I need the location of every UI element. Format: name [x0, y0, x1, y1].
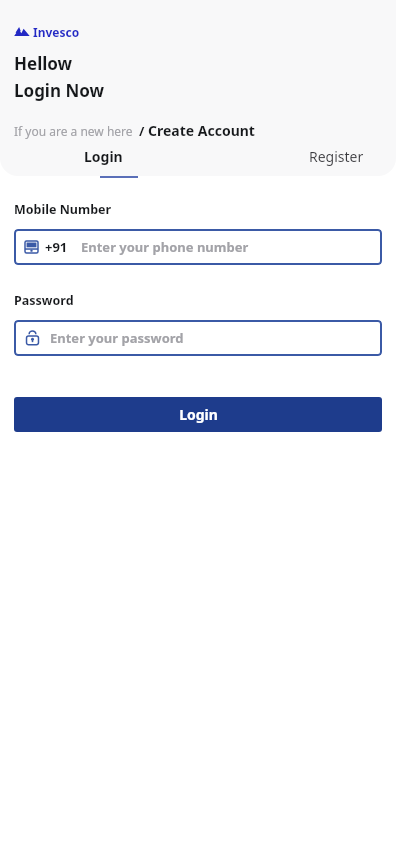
staticText: Enter your password: [50, 329, 184, 347]
staticText: Mobile Number: [14, 201, 112, 218]
staticText: Register: [309, 147, 364, 166]
staticText: /: [139, 122, 148, 140]
staticText: Password: [14, 292, 74, 309]
button[interactable]: Enter your password: [14, 320, 382, 356]
button[interactable]: Login: [82, 145, 125, 168]
button[interactable]: Register: [307, 145, 366, 168]
button[interactable]: +91: [14, 229, 382, 265]
staticText: Login: [84, 147, 123, 166]
staticText: +91: [45, 238, 68, 256]
staticText: Invesco: [33, 24, 80, 40]
button[interactable]: Login: [14, 397, 382, 432]
staticText: If you are a new here: [14, 123, 133, 139]
staticText: Enter your phone number: [81, 238, 249, 256]
button[interactable]: /: [139, 121, 255, 140]
button[interactable]: Invesco logo: [14, 24, 80, 40]
staticText: Login: [179, 405, 218, 424]
staticText: Login Now: [14, 79, 105, 102]
staticText: Create Account: [148, 121, 255, 140]
staticText: Hellow: [14, 52, 73, 75]
